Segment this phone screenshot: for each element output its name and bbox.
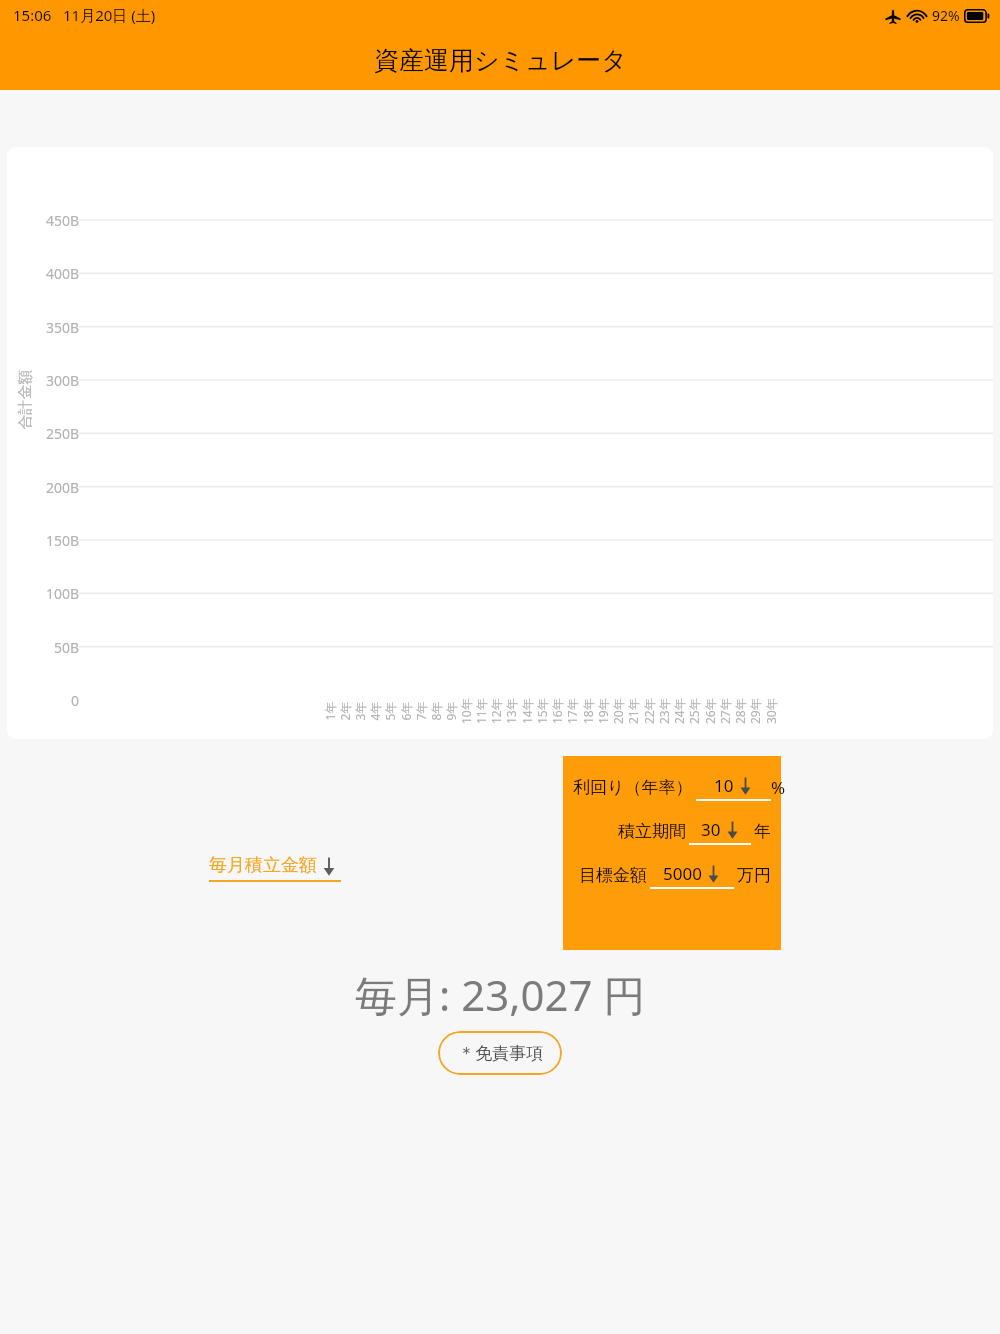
staticText: 10年 [458,698,474,724]
staticText: 21年 [625,698,641,724]
staticText: 12年 [488,698,504,724]
staticText: 11月20日 (土) [63,5,156,25]
staticText: 50B [53,638,79,657]
staticText: 400B [45,264,79,283]
button[interactable]: 毎月積立金額 [209,854,341,882]
staticText: 15:06 [13,5,52,25]
staticText: 14年 [519,698,535,724]
staticText: 92% [932,6,960,25]
staticText: 250B [45,424,79,443]
staticText: 30 [701,818,721,841]
button[interactable]: 積立期間 [573,818,771,845]
staticText: 450B [45,211,79,230]
staticText: 26年 [702,698,718,724]
staticText: 合計金額 [15,369,34,429]
staticText: 4年 [366,701,382,720]
staticText: 15年 [534,698,550,724]
staticText: 9年 [442,701,458,720]
staticText: 積立期間 [618,821,686,842]
staticText: 29年 [747,698,763,724]
staticText: 13年 [503,698,519,724]
staticText: 28年 [732,698,748,724]
staticText: 7年 [412,701,428,720]
staticText: 25年 [686,698,702,724]
staticText: 20年 [610,698,626,724]
button[interactable]: ＊免責事項 [438,1031,562,1075]
staticText: 1年 [321,701,337,720]
staticText: 毎月: 23,027 円 [355,966,646,1023]
staticText: 350B [45,318,79,337]
staticText: 資産運用シミュレータ [374,45,627,76]
staticText: 2年 [336,701,352,720]
staticText: 200B [45,478,79,497]
staticText: ＊免責事項 [458,1043,543,1064]
staticText: 24年 [671,698,687,724]
button[interactable]: 目標金額 [573,862,771,889]
staticText: 100B [45,584,79,603]
staticText: 17年 [564,698,580,724]
staticText: 5000 [663,862,702,885]
staticText: 150B [45,531,79,550]
staticText: 3年 [351,701,367,720]
staticText: 22年 [641,698,657,724]
staticText: 年 [754,821,771,842]
staticText: 18年 [580,698,596,724]
staticText: 19年 [595,698,611,724]
staticText: 16年 [549,698,565,724]
staticText: 0 [70,691,79,710]
staticText: 5年 [381,701,397,720]
staticText: 30年 [763,698,779,724]
staticText: 23年 [656,698,672,724]
staticText: 27年 [717,698,733,724]
staticText: 300B [45,371,79,390]
staticText: 11年 [473,698,489,724]
staticText: 10 [714,774,734,797]
button[interactable]: 利回り（年率） [573,774,771,801]
staticText: 8年 [427,701,443,720]
staticText: 目標金額 [579,865,647,886]
staticText: 6年 [397,701,413,720]
staticText: 利回り（年率） [573,777,693,798]
staticText: 毎月積立金額 [209,854,317,877]
staticText: 万円 [737,865,771,886]
